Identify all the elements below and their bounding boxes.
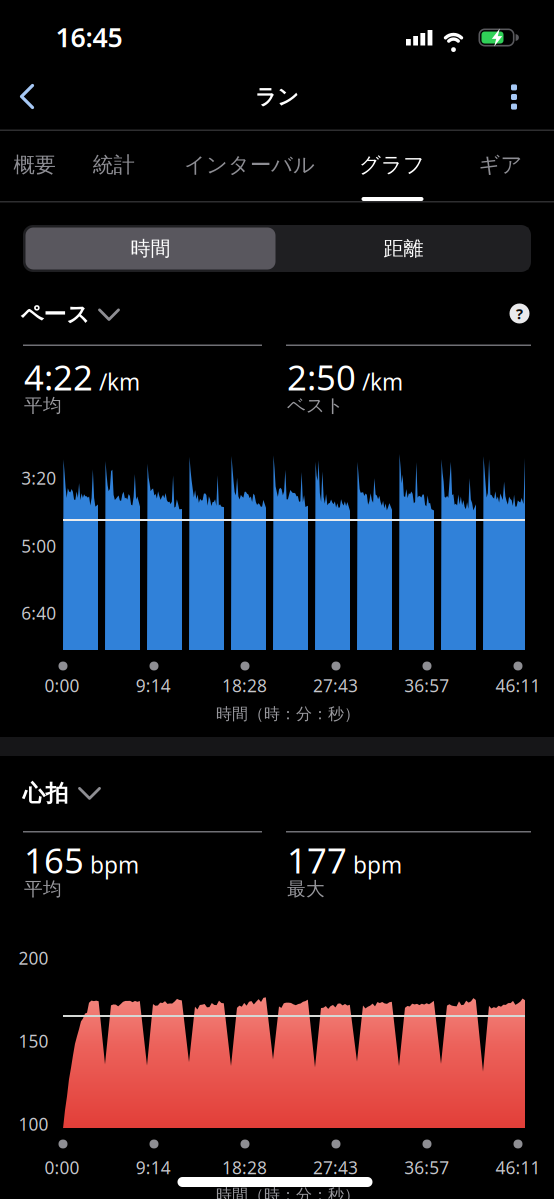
staticText: 3:20 — [21, 466, 56, 489]
button[interactable]: インターバル — [184, 130, 315, 200]
staticText: 27:43 — [313, 1156, 358, 1179]
button[interactable]: 時間 — [25, 227, 275, 269]
staticText: 概要 — [13, 152, 55, 178]
staticText: 177 — [287, 837, 347, 883]
button[interactable]: ギア — [478, 130, 522, 200]
button[interactable]: Help — [509, 303, 529, 323]
staticText: 36:57 — [404, 674, 449, 697]
staticText: 平均 — [24, 394, 62, 417]
staticText: 4:22 — [24, 354, 93, 400]
staticText: 平均 — [24, 877, 62, 900]
staticText: 2:50 — [287, 354, 356, 400]
staticText: 時間（時：分：秒） — [216, 1185, 360, 1199]
staticText: インターバル — [184, 152, 315, 178]
staticText: ペース — [20, 301, 89, 328]
button[interactable]: ペース — [20, 301, 119, 328]
staticText: 時間 — [130, 236, 170, 261]
staticText: 統計 — [92, 152, 134, 178]
staticText: 18:28 — [222, 1156, 267, 1179]
staticText: bpm — [90, 850, 139, 880]
staticText: 165 — [24, 837, 84, 883]
staticText: 200 — [18, 946, 48, 969]
staticText: 距離 — [383, 236, 423, 261]
staticText: 36:57 — [404, 1156, 449, 1179]
staticText: 46:11 — [495, 1156, 540, 1179]
staticText: 0:00 — [44, 674, 79, 697]
button[interactable]: グラフ — [359, 130, 425, 200]
staticText: 0:00 — [44, 1156, 79, 1179]
staticText: ラン — [255, 84, 299, 110]
staticText: 150 — [18, 1029, 48, 1052]
staticText: 16:45 — [55, 19, 122, 55]
staticText: 100 — [18, 1112, 48, 1135]
staticText: 46:11 — [495, 674, 540, 697]
staticText: 時間（時：分：秒） — [216, 704, 360, 724]
button[interactable]: 距離 — [278, 227, 528, 269]
staticText: ベスト — [287, 394, 344, 417]
staticText: /km — [99, 367, 140, 397]
staticText: 9:14 — [136, 1156, 171, 1179]
staticText: グラフ — [359, 152, 425, 178]
staticText: ギア — [478, 152, 522, 178]
staticText: 18:28 — [222, 674, 267, 697]
button[interactable]: More options — [494, 75, 534, 119]
staticText: 5:00 — [21, 534, 56, 557]
staticText: 27:43 — [313, 674, 358, 697]
button[interactable]: 概要 — [13, 130, 55, 200]
button[interactable]: 統計 — [92, 130, 134, 200]
staticText: /km — [362, 367, 403, 397]
staticText: ? — [516, 304, 523, 323]
staticText: bpm — [353, 850, 402, 880]
staticText: 最大 — [287, 877, 325, 900]
button[interactable]: Back — [5, 74, 49, 118]
button[interactable]: 心拍 — [22, 780, 101, 807]
staticText: 6:40 — [21, 601, 56, 624]
staticText: 心拍 — [22, 780, 68, 807]
staticText: 9:14 — [136, 674, 171, 697]
